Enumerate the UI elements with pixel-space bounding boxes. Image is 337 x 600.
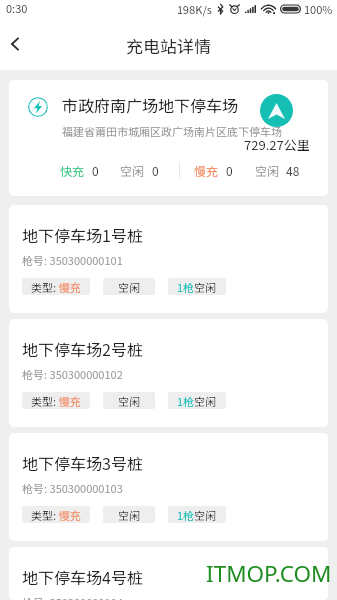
staticText: 类型: 慢充 — [31, 279, 81, 295]
staticText: 1枪空闲 — [177, 279, 217, 295]
staticText: 729.27公里 — [244, 135, 310, 154]
staticText: 空闲 — [118, 507, 140, 523]
button[interactable]: 地下停车场4号桩 — [9, 547, 328, 600]
staticText: 1枪空闲 — [177, 393, 217, 409]
staticText: 类型: 慢充 — [31, 393, 81, 409]
staticText: 地下停车场3号桩 — [22, 451, 143, 474]
button[interactable]: 地下停车场3号桩 — [9, 433, 328, 541]
staticText: 枪号: 350300000104 — [22, 594, 123, 600]
staticText: 枪号: 350300000101 — [22, 252, 123, 268]
button[interactable]: 地下停车场2号桩 — [9, 319, 328, 427]
staticText: 类型: 慢充 — [31, 507, 81, 523]
staticText: 0 — [226, 162, 233, 179]
staticText: 充电站详情 — [126, 33, 211, 58]
staticText: 快充 — [60, 162, 85, 179]
staticText: 空闲 — [118, 279, 140, 295]
button[interactable]: 地下停车场1号桩 — [9, 205, 328, 313]
staticText: 市政府南广场地下停车场 — [62, 93, 239, 116]
staticText: 1枪空闲 — [177, 507, 217, 523]
staticText: 100% — [304, 1, 333, 17]
staticText: 慢充 — [194, 162, 219, 179]
staticText: ITMOP.COM — [206, 558, 332, 589]
staticText: 地下停车场1号桩 — [22, 223, 143, 246]
button[interactable]: Navigate — [260, 94, 293, 127]
staticText: 枪号: 350300000102 — [22, 366, 123, 382]
staticText: 空闲 — [120, 162, 145, 179]
staticText: 198K/s — [177, 1, 212, 17]
staticText: 地下停车场4号桩 — [22, 565, 143, 588]
staticText: 0 — [152, 162, 159, 179]
staticText: 地下停车场2号桩 — [22, 337, 143, 360]
button[interactable]: 市政府南广场地下停车场 — [9, 80, 328, 196]
staticText: 福建省莆田市城厢区政广场南片区底下停车场 — [62, 123, 282, 139]
staticText: 48 — [286, 162, 300, 179]
staticText: 0 — [92, 162, 99, 179]
staticText: 0:30 — [6, 0, 28, 16]
staticText: 空闲 — [255, 162, 280, 179]
staticText: 枪号: 350300000103 — [22, 480, 123, 496]
staticText: 空闲 — [118, 393, 140, 409]
button[interactable]: Back — [0, 19, 44, 70]
